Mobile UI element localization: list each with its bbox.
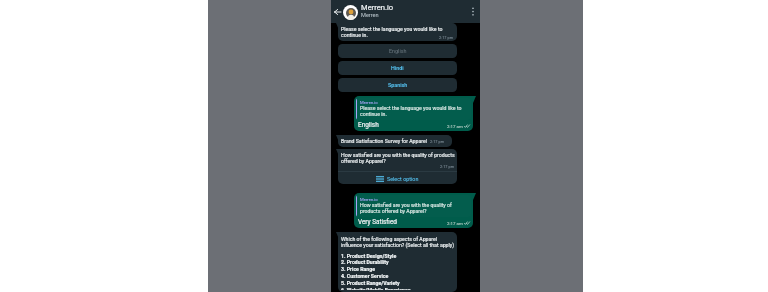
staticText: How satisfied are you with the quality o… (360, 202, 468, 214)
staticText: 1. Product Design/Style 2. Product Durab… (341, 253, 411, 290)
staticText: Merren.io (360, 100, 378, 105)
staticText: Select option (387, 176, 419, 182)
button[interactable]: More options (466, 0, 480, 23)
button[interactable]: English (338, 44, 457, 58)
staticText: 2:17 pm (430, 139, 445, 144)
staticText: 2:17 am (447, 221, 463, 226)
button[interactable]: Hindi (338, 61, 457, 75)
staticText: Merren (361, 12, 379, 19)
staticText: English (389, 48, 407, 54)
button[interactable]: Select option (338, 172, 457, 184)
staticText: Very Satisfied (358, 218, 397, 226)
staticText: Brand Satisfaction Survey for Apparel (341, 138, 427, 144)
staticText: Please select the language you would lik… (341, 26, 454, 38)
button[interactable]: Spanish (338, 78, 457, 92)
staticText: 2:17 am (447, 124, 463, 129)
staticText: Hindi (391, 65, 404, 71)
staticText: Spanish (388, 82, 408, 88)
staticText: Please select the language you would lik… (360, 105, 468, 117)
staticText: 2:17 pm (439, 35, 454, 40)
staticText: Merren.io (361, 3, 394, 12)
staticText: Which of the following aspects of Appare… (341, 236, 455, 248)
staticText: How satisfied are you with the quality o… (341, 152, 455, 164)
staticText: Merren.io (360, 197, 378, 202)
button[interactable]: Back (330, 0, 344, 23)
staticText: English (358, 121, 379, 129)
staticText: 2:17 pm (440, 164, 455, 169)
